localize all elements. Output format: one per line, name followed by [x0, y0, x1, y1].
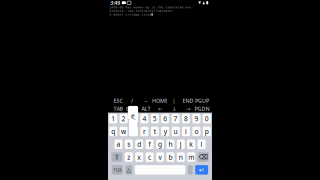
button[interactable]: f — [146, 139, 154, 149]
button[interactable]: Dictation — [125, 165, 132, 175]
button[interactable]: ESC — [111, 97, 125, 105]
button[interactable]: g — [156, 139, 164, 149]
staticText: → — [186, 106, 190, 112]
staticText: ↓ — [172, 106, 176, 112]
button[interactable]: 0 — [203, 114, 211, 123]
button[interactable]: HOME — [152, 97, 168, 105]
button[interactable]: / — [125, 97, 139, 105]
button[interactable]: m — [187, 152, 195, 162]
button[interactable]: PGUP — [195, 97, 209, 105]
button[interactable]: 4 — [140, 114, 148, 123]
button[interactable]: c — [146, 152, 154, 162]
button[interactable]: u — [172, 127, 180, 136]
button[interactable]: s — [125, 139, 133, 149]
button[interactable]: p — [203, 127, 211, 136]
staticText: t — [154, 127, 156, 136]
staticText: v — [158, 153, 161, 161]
staticText: l — [201, 140, 203, 149]
button[interactable]: 2 — [120, 114, 128, 123]
staticText: iPad-OS has woken up in the simulated en… — [109, 6, 193, 9]
button[interactable]: | — [167, 97, 181, 105]
staticText: $ mkdir src/app_jinja — [109, 13, 151, 16]
button[interactable]: 6 — [161, 114, 169, 123]
staticText: ↵ — [199, 166, 205, 174]
staticText: k — [189, 140, 193, 149]
staticText: △ — [127, 167, 131, 173]
button[interactable]: Next keyboard — [188, 165, 193, 175]
staticText: 4 — [142, 114, 146, 123]
button[interactable]: CTRL — [125, 105, 139, 113]
button[interactable]: PGDN — [194, 105, 209, 113]
button[interactable] — [135, 165, 185, 175]
staticText: d — [137, 140, 141, 149]
button[interactable]: i — [182, 127, 190, 136]
staticText: u — [174, 127, 178, 136]
button[interactable]: y — [161, 127, 169, 136]
button[interactable]: z — [125, 152, 133, 162]
staticText: END — [182, 97, 193, 104]
button[interactable]: 7 — [172, 114, 180, 123]
button[interactable]: k — [187, 139, 195, 149]
staticText: 3:49 — [110, 0, 120, 6]
staticText: ?123 — [113, 167, 121, 172]
staticText: 9 — [194, 114, 198, 123]
button[interactable]: 5 — [151, 114, 159, 123]
button[interactable]: 1 — [109, 114, 117, 123]
button[interactable]: 3 — [130, 114, 138, 123]
staticText: | — [172, 97, 175, 104]
button[interactable]: ?123 — [112, 165, 123, 175]
button[interactable]: t — [151, 127, 159, 136]
button[interactable]: Return — [195, 165, 208, 175]
staticText: s — [127, 140, 130, 149]
button[interactable]: ↓ — [167, 105, 181, 113]
button[interactable]: v — [156, 152, 164, 162]
button[interactable]: q — [109, 127, 117, 136]
staticText: Console: run-interpret/luminate: — [109, 9, 173, 12]
button[interactable]: TAB — [111, 105, 125, 113]
button[interactable]: a — [114, 139, 122, 149]
button[interactable]: 8 — [182, 114, 190, 123]
button[interactable]: b — [166, 152, 174, 162]
staticText: n — [179, 153, 183, 161]
button[interactable]: → — [181, 105, 195, 113]
staticText: g — [158, 140, 162, 149]
button[interactable]: h — [166, 139, 174, 149]
staticText: f — [149, 140, 151, 149]
staticText: ALT — [141, 105, 150, 112]
button[interactable]: ALT — [139, 105, 153, 113]
button[interactable]: END — [181, 97, 195, 105]
button[interactable]: l — [198, 139, 206, 149]
button[interactable]: o — [192, 127, 200, 136]
staticText: z — [127, 153, 130, 161]
staticText: TAB — [113, 105, 122, 112]
button[interactable]: d — [135, 139, 143, 149]
staticText: w — [121, 127, 126, 136]
staticText: q — [111, 127, 115, 136]
button[interactable]: r — [140, 127, 148, 136]
staticText: x — [137, 153, 141, 161]
staticText: 7 — [174, 114, 178, 123]
staticText: i — [185, 127, 187, 136]
button[interactable]: w — [120, 127, 128, 136]
button[interactable]: Delete — [198, 152, 209, 162]
button[interactable]: x — [135, 152, 143, 162]
staticText: PGUP — [195, 97, 209, 104]
staticText: HOME — [152, 97, 168, 104]
button[interactable]: Shift — [111, 152, 122, 162]
staticText: ⌫ — [199, 153, 208, 161]
button[interactable]: n — [177, 152, 185, 162]
button[interactable]: ← — [153, 105, 167, 113]
button[interactable]: 9 — [192, 114, 200, 123]
staticText: j — [180, 140, 182, 149]
staticText: y — [164, 127, 167, 136]
staticText: c — [148, 153, 151, 161]
staticText: 0 — [205, 114, 209, 123]
staticText: PGDN — [194, 105, 209, 112]
staticText: a — [116, 140, 120, 149]
button[interactable]: j — [177, 139, 185, 149]
staticText: ⇧ — [114, 153, 120, 161]
staticText: ESC — [113, 97, 122, 104]
button[interactable]: ~ — [139, 97, 153, 105]
